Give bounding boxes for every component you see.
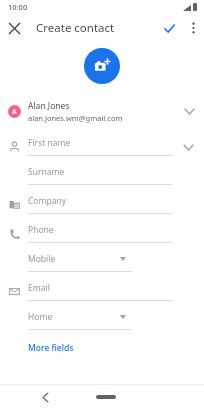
button[interactable]: Surname	[0, 161, 204, 190]
staticText: Alan Jones	[28, 100, 70, 112]
button[interactable]: Company	[0, 190, 204, 219]
button[interactable]: Back	[36, 388, 54, 406]
button[interactable]: Close	[0, 14, 28, 42]
button[interactable]: First name	[0, 132, 204, 161]
button[interactable]: Expand name	[175, 134, 201, 160]
button[interactable]: Phone	[0, 219, 204, 248]
staticText: 10:00	[8, 2, 28, 12]
button[interactable]: A	[0, 96, 204, 126]
staticText: Email	[28, 282, 50, 294]
button[interactable]: Save	[156, 15, 182, 41]
staticText: Mobile	[28, 253, 56, 265]
staticText: A	[12, 107, 17, 117]
button[interactable]: Mobile	[0, 248, 204, 277]
other: Change account	[174, 96, 204, 126]
button[interactable]: More options	[182, 17, 204, 39]
staticText: Home	[28, 311, 53, 323]
button[interactable]: Home	[96, 395, 116, 399]
staticText: alan.jones.wm@gmail.com	[28, 113, 123, 123]
staticText: First name	[28, 137, 71, 149]
staticText: Company	[28, 195, 67, 207]
button[interactable]: Home	[0, 306, 204, 335]
button[interactable]: More fields	[28, 342, 74, 354]
staticText: Surname	[28, 166, 65, 178]
staticText: More fields	[28, 342, 74, 354]
button[interactable]: Email	[0, 277, 204, 306]
staticText: Create contact	[36, 20, 115, 36]
button[interactable]: Add photo	[84, 48, 120, 84]
staticText: Phone	[28, 224, 54, 236]
